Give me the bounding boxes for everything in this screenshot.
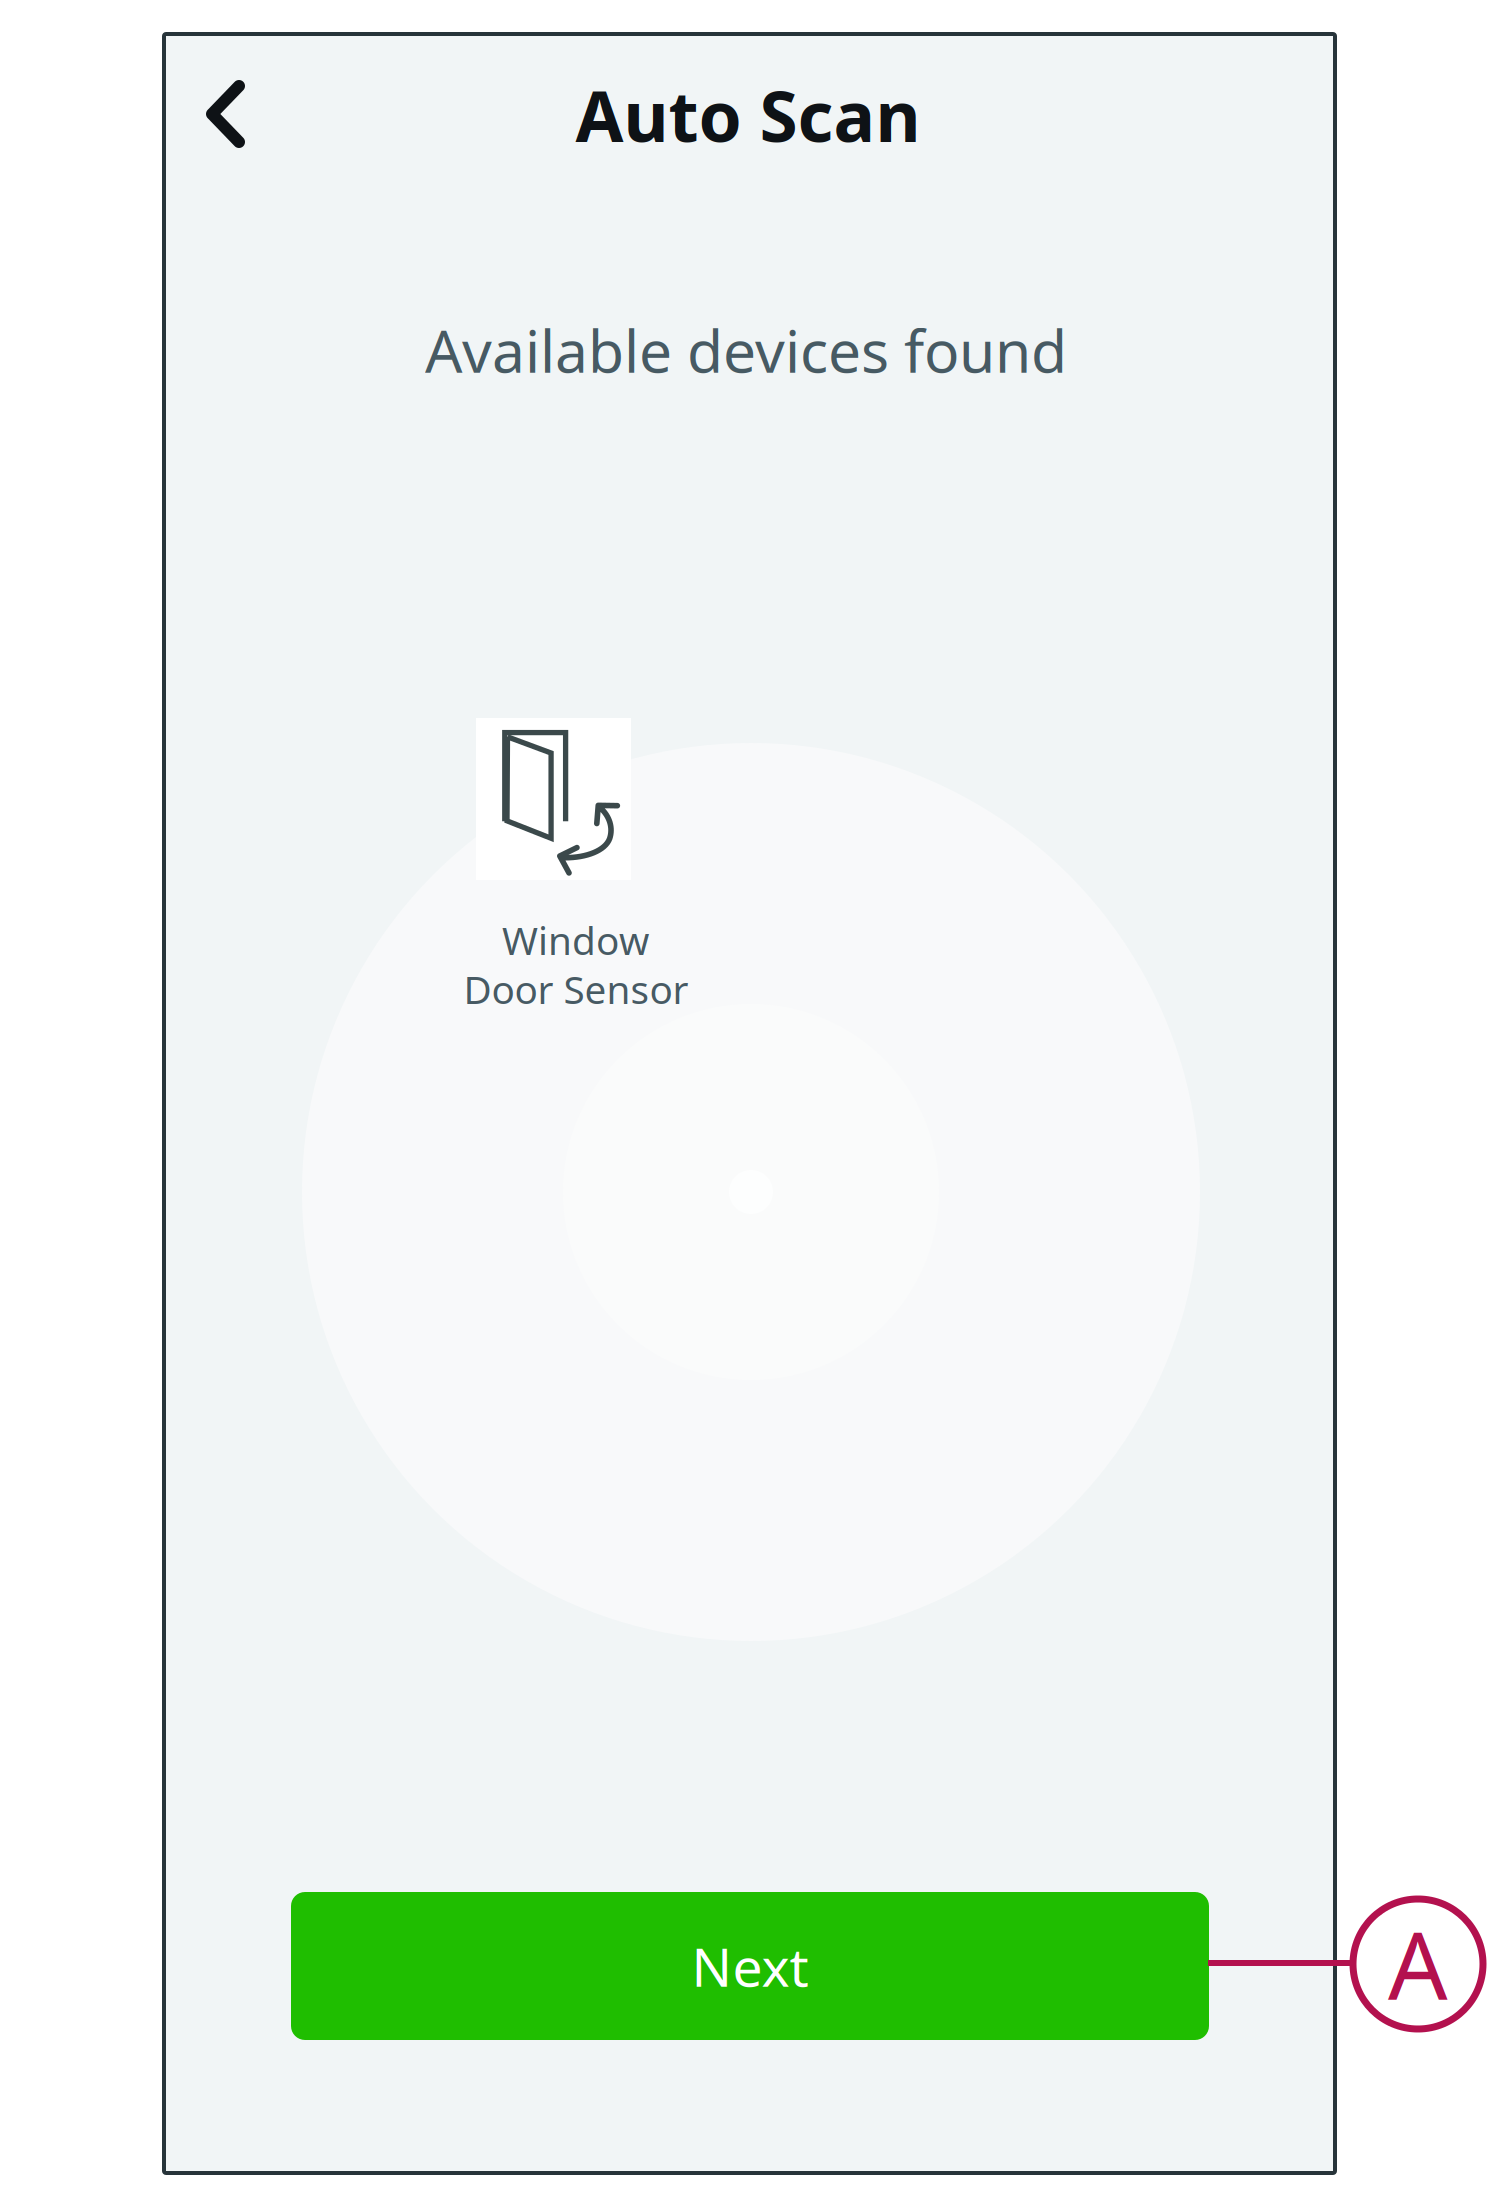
staticText: A <box>1388 1902 1448 2026</box>
button[interactable]: Back <box>178 52 273 176</box>
staticText: Window <box>502 914 649 966</box>
staticText: Available devices found <box>425 311 1067 389</box>
staticText: Next <box>691 1931 808 2001</box>
button[interactable]: Next <box>291 1892 1209 2040</box>
staticText: Door Sensor <box>463 963 688 1015</box>
button[interactable]: Window <box>446 710 706 1020</box>
staticText: Auto Scan <box>575 69 920 161</box>
